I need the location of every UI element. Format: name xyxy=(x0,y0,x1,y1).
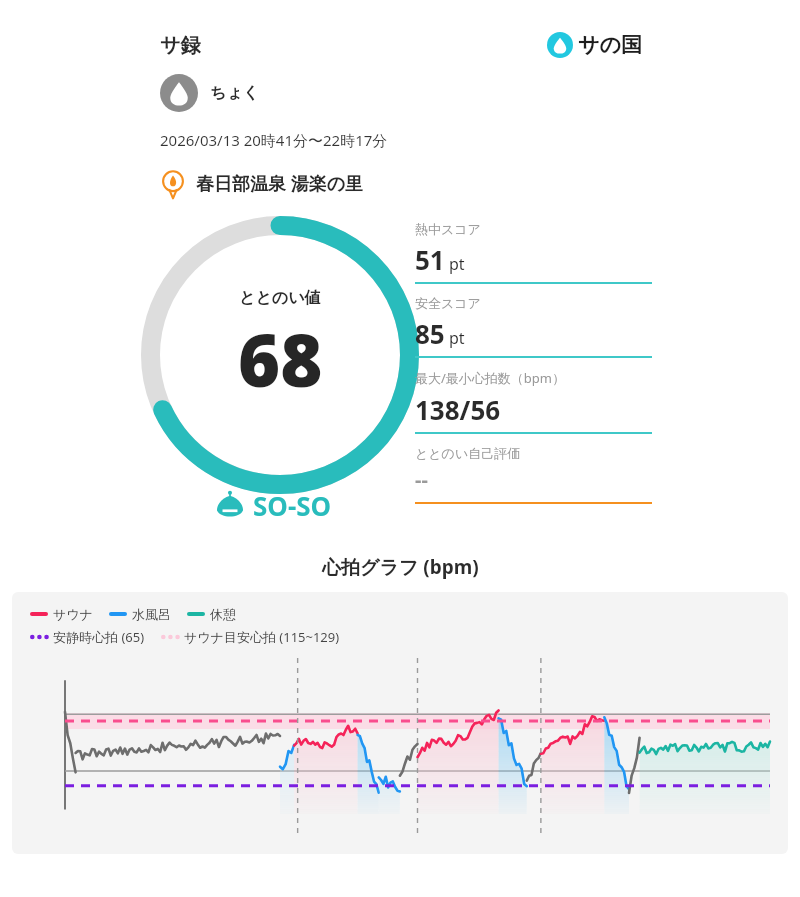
button[interactable]: 熱中スコア xyxy=(415,210,652,284)
staticText: 安全スコア xyxy=(415,295,481,311)
staticText: 最大/最小心拍数（bpm） xyxy=(415,369,565,387)
button[interactable]: 春日部温泉 湯楽の里 xyxy=(158,168,364,198)
button[interactable]: ちょく xyxy=(160,74,260,112)
staticText: 2026/03/13 20時41分〜22時17分 xyxy=(160,130,388,150)
staticText: ととのい値 xyxy=(239,288,321,308)
staticText: ちょく xyxy=(210,83,260,103)
staticText: 熱中スコア xyxy=(415,221,481,237)
staticText: 安静時心拍 (65) xyxy=(53,628,145,646)
staticText: 85 xyxy=(415,316,445,351)
button[interactable]: 安全スコア xyxy=(415,284,652,358)
button[interactable]: ととのい自己評価 xyxy=(415,434,652,504)
staticText: サ録 xyxy=(160,33,201,58)
staticText: 68 xyxy=(238,310,323,408)
staticText: 138/56 xyxy=(415,392,501,427)
staticText: SO-SO xyxy=(253,488,332,523)
staticText: 心拍グラフ (bpm) xyxy=(322,554,479,580)
staticText: -- xyxy=(415,466,428,493)
staticText: 51 xyxy=(415,242,445,277)
staticText: 水風呂 xyxy=(132,606,171,622)
staticText: サの国 xyxy=(578,32,642,58)
staticText: サウナ xyxy=(53,606,93,622)
button[interactable]: 最大/最小心拍数（bpm） xyxy=(415,358,652,434)
staticText: ととのい自己評価 xyxy=(415,445,521,461)
button[interactable]: サの国 logo xyxy=(547,32,642,58)
staticText: pt xyxy=(449,253,465,275)
button[interactable]: SO-SO xyxy=(213,488,332,523)
staticText: 休憩 xyxy=(210,606,236,622)
staticText: 春日部温泉 湯楽の里 xyxy=(196,171,364,196)
staticText: pt xyxy=(449,327,465,349)
staticText: サウナ目安心拍 (115~129) xyxy=(184,628,340,646)
